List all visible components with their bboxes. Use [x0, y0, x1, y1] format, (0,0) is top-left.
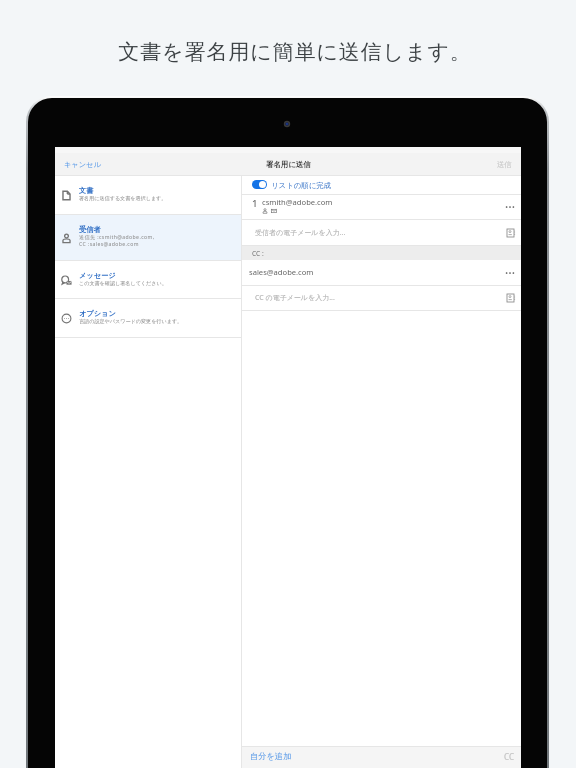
- button[interactable]: 文書: [55, 176, 241, 215]
- button[interactable]: リストの順に完成: [242, 176, 521, 194]
- staticText: リストの順に完成: [271, 181, 331, 190]
- button[interactable]: CC の電子メールを入力...: [242, 286, 521, 310]
- staticText: 自分を追加: [250, 751, 292, 761]
- staticText: CC の電子メールを入力...: [255, 293, 335, 303]
- staticText: CC :: [252, 249, 264, 258]
- staticText: 署名用に送信: [266, 160, 311, 169]
- button[interactable]: Choose from contacts: [506, 293, 516, 303]
- button[interactable]: 送信: [471, 153, 521, 176]
- button[interactable]: Choose from contacts: [506, 228, 516, 238]
- button[interactable]: CC: [498, 747, 521, 765]
- button[interactable]: More options: [499, 196, 521, 218]
- button[interactable]: キャンセル: [55, 153, 175, 176]
- button[interactable]: 受信者: [55, 215, 241, 261]
- staticText: オプション: [79, 309, 116, 318]
- button[interactable]: sales@adobe.com: [242, 260, 521, 285]
- staticText: 言語の設定やパスワードの変更を行います。: [79, 318, 183, 324]
- staticText: 送信先 :csmith@adobe.com,: [79, 234, 155, 241]
- button[interactable]: メッセージ: [55, 261, 241, 299]
- staticText: 送信: [497, 160, 512, 169]
- staticText: 署名用に送信する文書を選択します。: [79, 195, 167, 201]
- staticText: csmith@adobe.com: [262, 197, 333, 207]
- button[interactable]: 1: [242, 195, 521, 219]
- button[interactable]: オプション: [55, 299, 241, 338]
- staticText: CC :sales@adobe.com: [79, 241, 139, 248]
- staticText: 1: [252, 197, 258, 210]
- staticText: キャンセル: [64, 160, 101, 169]
- staticText: メッセージ: [79, 271, 116, 280]
- button[interactable]: 自分を追加: [242, 747, 298, 765]
- button[interactable]: More options: [499, 262, 521, 284]
- button[interactable]: 受信者の電子メールを入力...: [242, 220, 521, 245]
- staticText: 文書: [79, 186, 94, 195]
- staticText: 文書を署名用に簡単に送信します。: [118, 39, 472, 65]
- staticText: 受信者の電子メールを入力...: [255, 228, 346, 238]
- staticText: CC: [504, 751, 514, 762]
- staticText: この文書を確認し署名してください。: [79, 280, 167, 286]
- staticText: sales@adobe.com: [249, 267, 314, 277]
- staticText: 受信者: [79, 225, 101, 234]
